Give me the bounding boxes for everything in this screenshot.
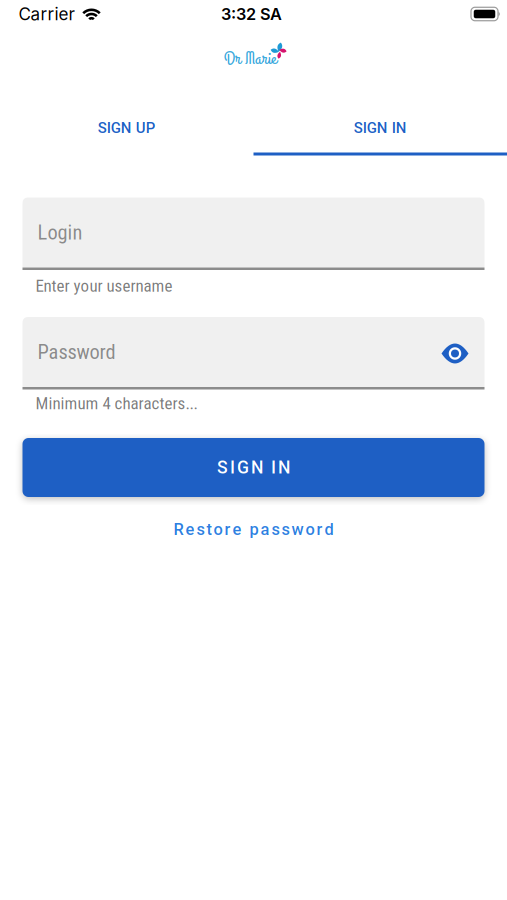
staticText: Dr Marie <box>224 46 277 72</box>
staticText: S I G N I N <box>217 457 290 478</box>
button[interactable]: R e s t o r e p a s s w o r d <box>113 510 393 549</box>
button[interactable]: SIGN UP <box>0 106 253 150</box>
staticText: SIGN UP <box>98 119 156 137</box>
button[interactable]: S I G N I N <box>22 438 484 497</box>
staticText: R e s t o r e p a s s w o r d <box>173 520 333 539</box>
staticText: Login <box>37 220 82 244</box>
staticText: Minimum 4 characters... <box>35 394 197 413</box>
staticText: Enter your username <box>35 276 172 296</box>
button[interactable]: Show password <box>441 341 468 362</box>
button[interactable]: SIGN IN <box>253 106 507 150</box>
staticText: Carrier <box>18 4 74 24</box>
staticText: SIGN IN <box>354 119 407 137</box>
staticText: Password <box>37 340 115 364</box>
staticText: 3:32 SA <box>221 4 282 24</box>
